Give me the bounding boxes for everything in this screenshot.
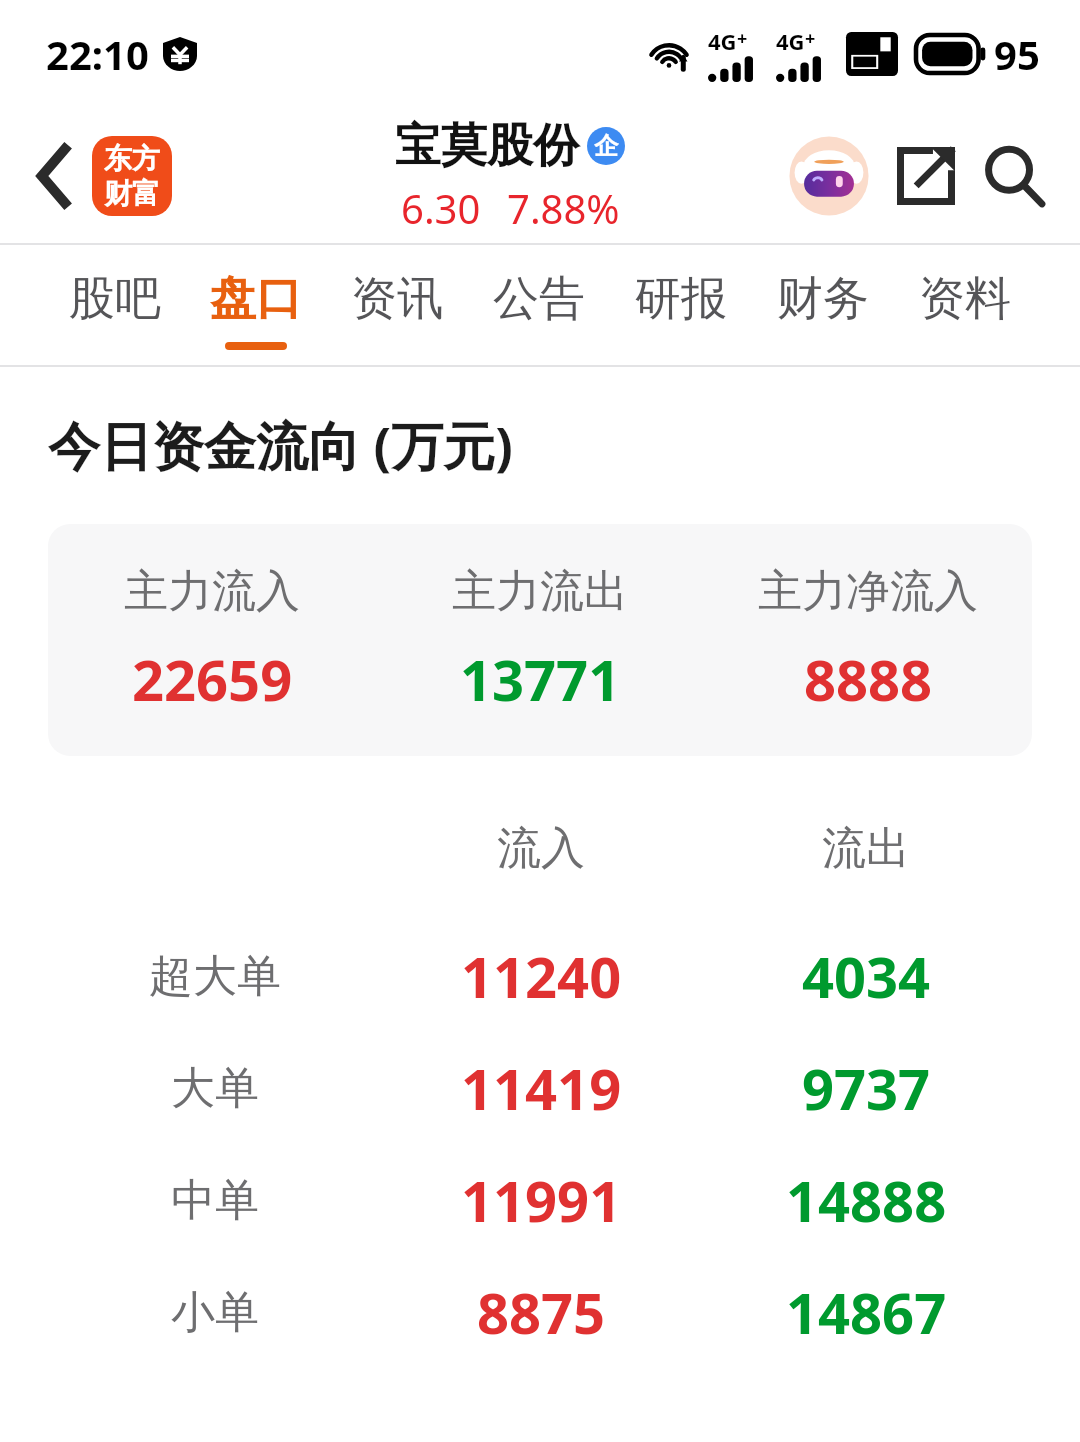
button[interactable]: 主力流入	[48, 524, 1032, 756]
button[interactable]: 中单	[0, 1144, 1080, 1256]
button[interactable]: AI assistant	[782, 129, 876, 223]
staticText: 4G	[708, 26, 737, 56]
staticText: 企	[594, 131, 618, 161]
staticText: +	[737, 26, 748, 51]
button[interactable]: Back	[18, 140, 90, 212]
staticText: 9737	[802, 1050, 931, 1126]
staticText: 11991	[461, 1162, 622, 1238]
staticText: 宝莫股份	[395, 117, 579, 175]
staticText: 股吧	[69, 270, 161, 328]
staticText: 13771	[460, 641, 621, 717]
button[interactable]: 盘口	[185, 245, 326, 365]
button[interactable]: 公告	[468, 245, 610, 365]
button[interactable]: East Money	[88, 132, 176, 220]
staticText: 财富	[104, 176, 160, 211]
staticText: 14867	[786, 1274, 947, 1350]
button[interactable]: 资料	[894, 245, 1036, 365]
staticText: 11240	[461, 938, 622, 1014]
button[interactable]: 小单	[0, 1256, 1080, 1368]
staticText: 大单	[171, 1061, 259, 1116]
staticText: 7.88%	[507, 181, 620, 235]
staticText: 6.30	[401, 181, 481, 235]
staticText: 主力净流入	[758, 564, 978, 619]
staticText: 22659	[132, 641, 293, 717]
button[interactable]: 大单	[0, 1032, 1080, 1144]
staticText: 主力流出	[452, 564, 628, 619]
button[interactable]: 研报	[610, 245, 752, 365]
button[interactable]: 超大单	[0, 920, 1080, 1032]
button[interactable]: 财务	[752, 245, 894, 365]
staticText: 主力流入	[124, 564, 300, 619]
staticText: 超大单	[149, 949, 281, 1004]
staticText: 小单	[171, 1285, 259, 1340]
staticText: 资料	[919, 270, 1011, 328]
staticText: 11419	[461, 1050, 622, 1126]
staticText: 8875	[477, 1274, 606, 1350]
staticText: 财务	[777, 270, 869, 328]
staticText: 研报	[635, 270, 727, 328]
staticText: 盘口	[210, 270, 302, 328]
staticText: 14888	[786, 1162, 947, 1238]
staticText: 中单	[171, 1173, 259, 1228]
staticText: 资讯	[351, 270, 443, 328]
button[interactable]: 股吧	[44, 245, 185, 365]
staticText: 8888	[804, 641, 933, 717]
staticText: 95	[994, 27, 1040, 81]
staticText: 22:10	[46, 27, 149, 81]
staticText: 东方	[104, 141, 160, 176]
staticText: +	[805, 26, 816, 51]
staticText: 今日资金流向 (万元)	[48, 409, 513, 480]
staticText: 流出	[822, 821, 910, 876]
button[interactable]: Share	[882, 132, 970, 220]
staticText: 公告	[493, 270, 585, 328]
button[interactable]: Search	[970, 132, 1058, 220]
staticText: 流入	[497, 821, 585, 876]
staticText: 4G	[776, 26, 805, 56]
staticText: 4034	[802, 938, 931, 1014]
button[interactable]: 资讯	[326, 245, 468, 365]
